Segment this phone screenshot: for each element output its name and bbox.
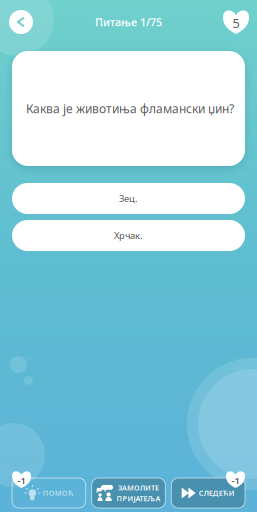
staticText: -1: [17, 474, 25, 487]
staticText: СЛЕДЕЋИ: [199, 488, 235, 498]
staticText: ПРИЈАТЕЉА: [116, 493, 160, 503]
button[interactable]: Хрчак.: [0, 220, 257, 251]
button[interactable]: ПОМОЋ: [12, 478, 86, 508]
staticText: Каква је животиња фламански џин?: [26, 100, 234, 116]
staticText: Питање 1/75: [95, 15, 162, 29]
staticText: -1: [231, 474, 239, 487]
staticText: Хрчак.: [114, 229, 143, 242]
button[interactable]: СЛЕДЕЋИ: [171, 478, 245, 508]
button[interactable]: ЗАМОЛИТЕ: [92, 478, 165, 508]
button[interactable]: Back: [4, 0, 38, 44]
staticText: ПОМОЋ: [43, 488, 74, 498]
staticText: Зец.: [119, 192, 138, 205]
button[interactable]: Зец.: [0, 183, 257, 214]
staticText: ЗАМОЛИТЕ: [118, 483, 159, 492]
staticText: 5: [232, 15, 239, 31]
